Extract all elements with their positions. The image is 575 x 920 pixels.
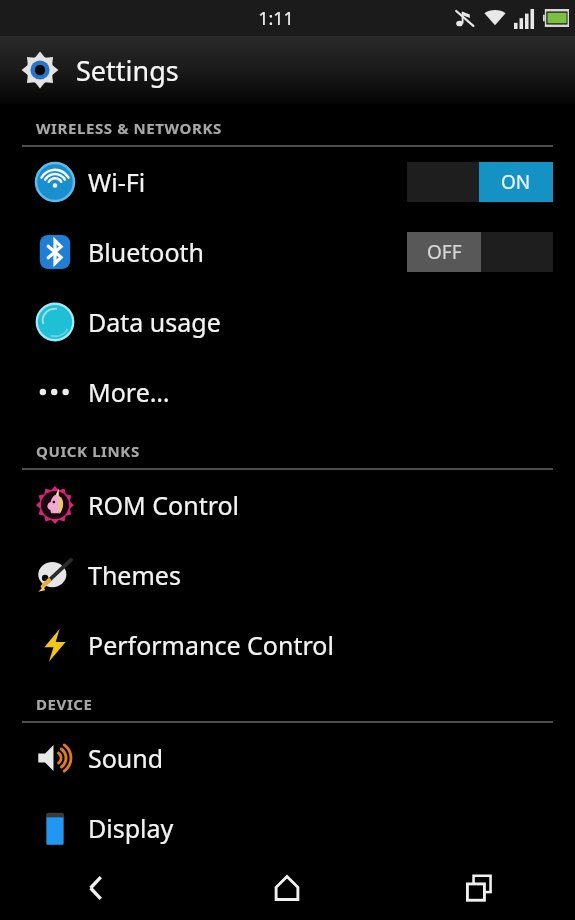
staticText: Display bbox=[88, 811, 553, 845]
staticText: ON bbox=[501, 169, 531, 195]
button[interactable]: Sound bbox=[0, 723, 575, 793]
staticText: QUICK LINKS bbox=[36, 441, 140, 461]
button[interactable]: Back bbox=[0, 855, 191, 920]
button[interactable]: Display bbox=[0, 793, 575, 863]
button[interactable]: Performance Control bbox=[0, 610, 575, 680]
button[interactable]: More… bbox=[0, 357, 575, 427]
staticText: More… bbox=[88, 375, 553, 409]
staticText: WIRELESS & NETWORKS bbox=[36, 118, 222, 138]
button[interactable]: ON bbox=[407, 162, 553, 202]
button[interactable]: Bluetooth bbox=[0, 217, 575, 287]
button[interactable]: OFF bbox=[407, 232, 553, 272]
staticText: Data usage bbox=[88, 305, 553, 339]
button[interactable]: ROM Control bbox=[0, 470, 575, 540]
staticText: Wi-Fi bbox=[88, 165, 407, 199]
staticText: Bluetooth bbox=[88, 235, 407, 269]
staticText: DEVICE bbox=[36, 694, 93, 714]
button[interactable]: Recent apps bbox=[383, 855, 575, 920]
button[interactable]: Themes bbox=[0, 540, 575, 610]
staticText: ROM Control bbox=[88, 488, 553, 522]
staticText: Sound bbox=[88, 741, 553, 775]
staticText: 1:11 bbox=[258, 6, 294, 31]
staticText: Settings bbox=[76, 52, 179, 89]
staticText: Performance Control bbox=[88, 628, 553, 662]
staticText: Themes bbox=[88, 558, 553, 592]
button[interactable]: Data usage bbox=[0, 287, 575, 357]
staticText: OFF bbox=[427, 239, 462, 265]
button[interactable]: Wi-Fi bbox=[0, 147, 575, 217]
button[interactable]: Home bbox=[191, 855, 383, 920]
